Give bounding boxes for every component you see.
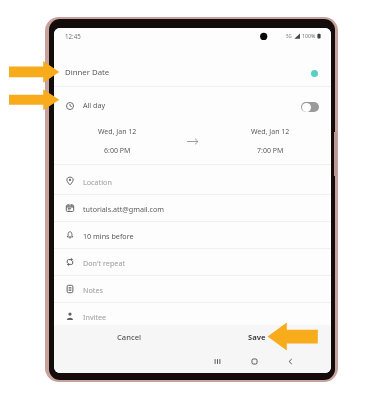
staticText: Save (248, 332, 266, 342)
staticText: Don't repeat (83, 258, 126, 268)
staticText: Invitee (83, 312, 107, 322)
button[interactable]: tutorials.att@gmail.com (54, 195, 331, 222)
staticText: 12:45 (65, 32, 81, 40)
button[interactable]: Home (244, 350, 264, 373)
button[interactable]: Recents (207, 350, 227, 373)
button[interactable]: All day (54, 87, 331, 123)
staticText: 10 mins before (83, 231, 134, 241)
button[interactable]: Don't repeat (54, 249, 331, 276)
staticText: Dinner Date (65, 67, 110, 78)
button[interactable]: Save (227, 325, 287, 348)
button[interactable]: Cancel (99, 325, 159, 348)
button[interactable]: Wed, Jan 12 (77, 123, 157, 169)
staticText: tutorials.att@gmail.com (83, 204, 165, 214)
staticText: Wed, Jan 12 (98, 127, 137, 137)
staticText: 7:00 PM (257, 146, 284, 156)
button[interactable]: Location (54, 168, 331, 195)
button[interactable]: Dinner Date (54, 56, 331, 87)
button[interactable]: Wed, Jan 12 (230, 123, 310, 169)
staticText: Cancel (117, 332, 142, 342)
staticText: 100% (302, 32, 316, 39)
button[interactable]: Back (280, 350, 300, 373)
button[interactable]: 10 mins before (54, 222, 331, 249)
button[interactable]: All day toggle (301, 102, 319, 112)
staticText: 6:00 PM (104, 146, 131, 156)
staticText: All day (83, 100, 105, 110)
button[interactable]: Invitee (54, 303, 331, 330)
button[interactable]: Notes (54, 276, 331, 303)
staticText: Location (83, 177, 112, 187)
staticText: 5G (286, 33, 292, 39)
staticText: Wed, Jan 12 (251, 127, 290, 137)
staticText: Notes (83, 285, 103, 295)
